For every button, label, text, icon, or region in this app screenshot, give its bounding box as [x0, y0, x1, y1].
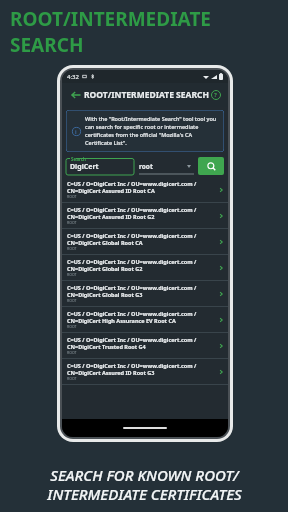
staticText: SEARCH	[10, 32, 84, 58]
button[interactable]: C=US / O=DigiCert Inc / OU=www.digicert.…	[62, 281, 228, 306]
staticText: ROOT	[67, 194, 77, 199]
staticText: C=US / O=DigiCert Inc / OU=www.digicert.…	[67, 310, 197, 317]
staticText: i	[75, 128, 77, 135]
button[interactable]: C=US / O=DigiCert Inc / OU=www.digicert.…	[62, 359, 228, 384]
staticText: CN=DigiCert Assured ID Root G3	[67, 369, 155, 376]
button[interactable]: C=US / O=DigiCert Inc / OU=www.digicert.…	[62, 229, 228, 254]
button[interactable]: C=US / O=DigiCert Inc / OU=www.digicert.…	[62, 203, 228, 228]
staticText: CN=DigiCert Global Root CA	[67, 239, 143, 246]
staticText: root	[139, 162, 153, 171]
button[interactable]: Help	[209, 87, 222, 103]
staticText: CN=DigiCert Assured ID Root G2	[67, 213, 155, 220]
staticText: ROOT	[67, 246, 77, 251]
button[interactable]: Search	[66, 157, 134, 175]
staticText: DigiCert	[70, 162, 99, 172]
staticText: ROOT/INTERMEDIATE SEARCH	[84, 89, 209, 101]
staticText: ROOT	[67, 376, 77, 381]
staticText: C=US / O=DigiCert Inc / OU=www.digicert.…	[67, 232, 197, 239]
staticText: ROOT	[67, 324, 77, 329]
staticText: CN=DigiCert Global Root G2	[67, 265, 143, 272]
staticText: C=US / O=DigiCert Inc / OU=www.digicert.…	[67, 284, 197, 291]
button[interactable]: C=US / O=DigiCert Inc / OU=www.digicert.…	[62, 307, 228, 332]
staticText: ROOT/INTERMEDIATE	[10, 6, 211, 32]
button[interactable]: C=US / O=DigiCert Inc / OU=www.digicert.…	[62, 333, 228, 358]
staticText: ROOT	[67, 272, 77, 277]
button[interactable]: C=US / O=DigiCert Inc / OU=www.digicert.…	[62, 255, 228, 280]
staticText: CN=DigiCert Trusted Root G4	[67, 343, 146, 350]
staticText: CN=DigiCert High Assurance EV Root CA	[67, 317, 176, 324]
staticText: C=US / O=DigiCert Inc / OU=www.digicert.…	[67, 180, 197, 187]
staticText: With the "Root/Intermediate Search" tool…	[85, 115, 219, 147]
button[interactable]: root	[139, 157, 194, 175]
staticText: SEARCH FOR KNOWN ROOT/ INTERMEDIATE CERT…	[47, 465, 242, 504]
staticText: C=US / O=DigiCert Inc / OU=www.digicert.…	[67, 336, 197, 343]
staticText: 4:32	[67, 73, 79, 81]
button[interactable]: Back	[68, 87, 84, 103]
staticText: CN=DigiCert Assured ID Root CA	[67, 187, 155, 194]
staticText: Search	[71, 156, 87, 162]
staticText: C=US / O=DigiCert Inc / OU=www.digicert.…	[67, 258, 197, 265]
button[interactable]: Search	[198, 157, 224, 175]
staticText: C=US / O=DigiCert Inc / OU=www.digicert.…	[67, 362, 197, 369]
staticText: ROOT	[67, 220, 77, 225]
staticText: CN=DigiCert Global Root G3	[67, 291, 143, 298]
button[interactable]: C=US / O=DigiCert Inc / OU=www.digicert.…	[62, 177, 228, 202]
staticText: ROOT	[67, 298, 77, 303]
staticText: C=US / O=DigiCert Inc / OU=www.digicert.…	[67, 206, 197, 213]
staticText: ?	[214, 91, 217, 99]
staticText: ROOT	[67, 350, 77, 355]
